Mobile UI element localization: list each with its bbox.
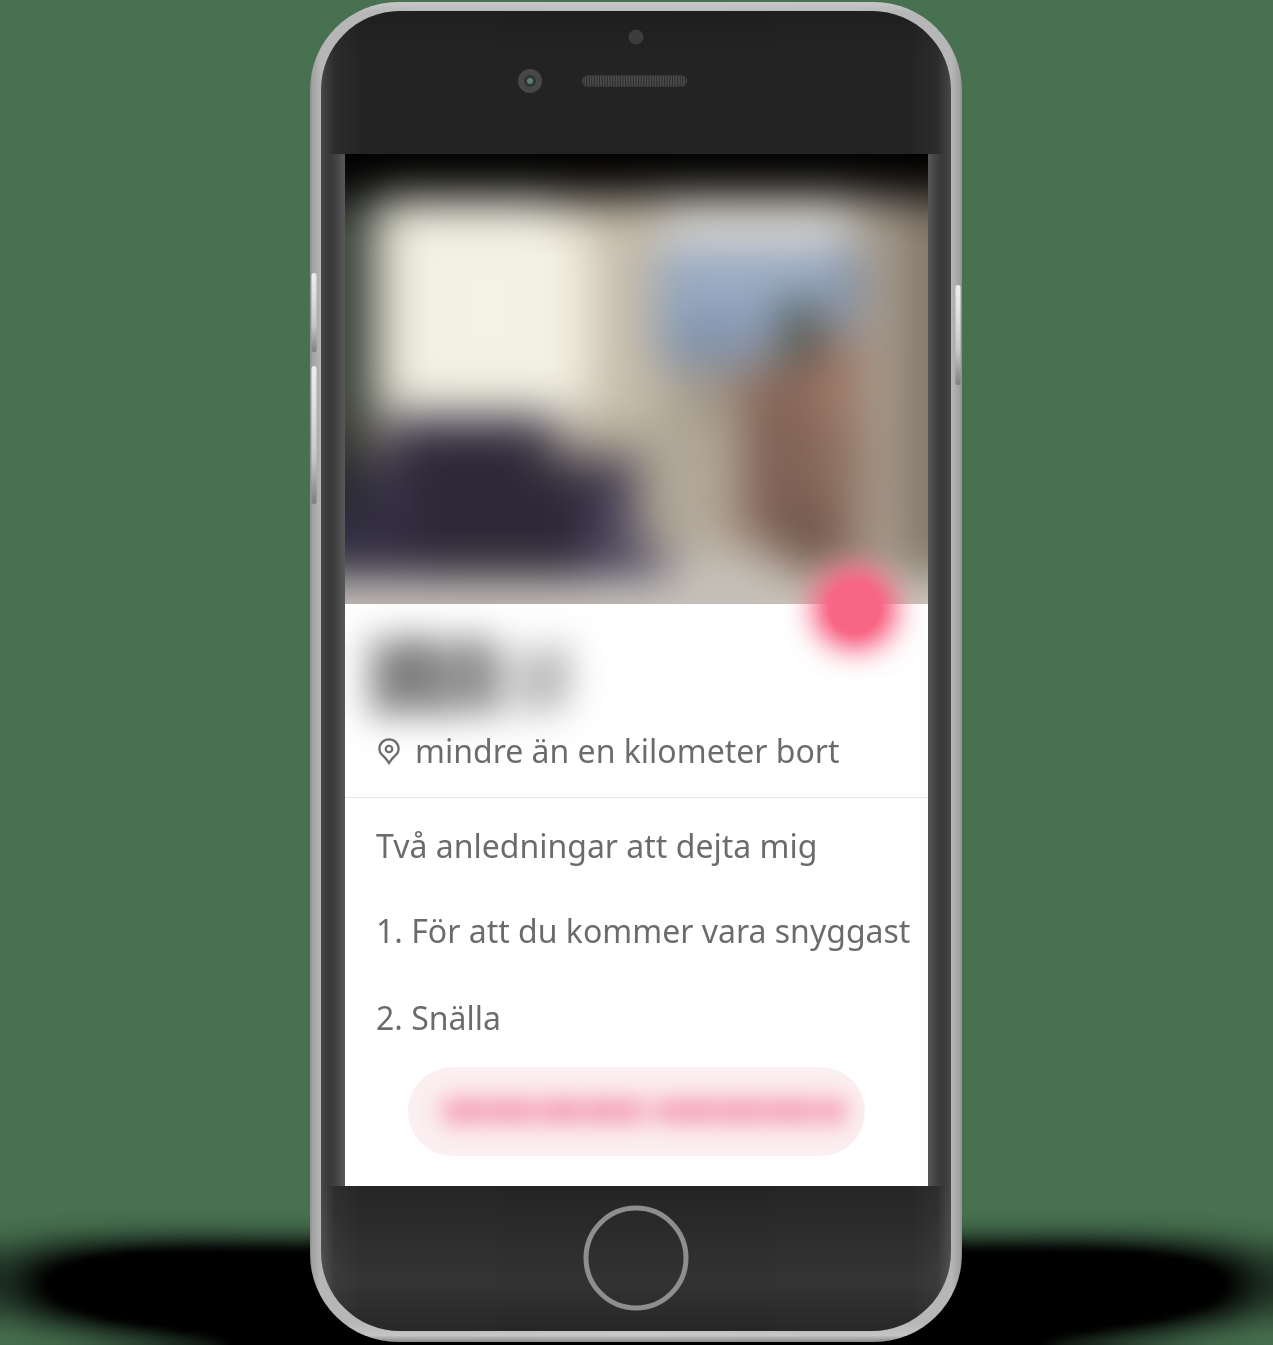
button[interactable] xyxy=(408,1067,865,1156)
button[interactable]: Like xyxy=(784,537,926,679)
staticText: mindre än en kilometer bort xyxy=(415,729,840,773)
staticText: 1. För att du kommer vara snyggast xyxy=(376,909,911,953)
staticText: 2. Snälla xyxy=(376,996,501,1040)
staticText: Två anledningar att dejta mig xyxy=(376,824,818,868)
button[interactable]: mindre än en kilometer bort xyxy=(345,714,928,788)
